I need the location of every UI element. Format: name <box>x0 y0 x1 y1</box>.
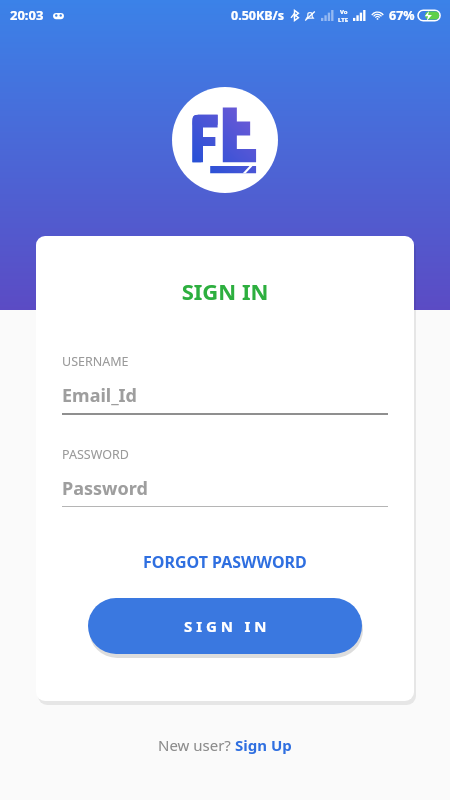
button[interactable]: FORGOT PASWWORD <box>36 551 414 573</box>
staticText: SIGN IN <box>36 276 414 306</box>
staticText: PASSWORD <box>62 446 129 463</box>
staticText: Vo <box>340 8 348 16</box>
staticText: Sign Up <box>235 735 292 755</box>
staticText: 67% <box>389 7 415 24</box>
staticText: Password <box>62 476 148 501</box>
button[interactable]: Email_Id <box>62 383 388 415</box>
staticText: Email_Id <box>62 383 137 408</box>
button[interactable]: S I G N I N <box>88 598 362 654</box>
staticText: FORGOT PASWWORD <box>143 551 307 573</box>
staticText: 20:03 <box>10 6 44 24</box>
button[interactable]: Password <box>62 476 388 507</box>
staticText: New user? <box>158 735 235 755</box>
staticText: USERNAME <box>62 353 129 370</box>
staticText: S I G N I N <box>184 616 267 636</box>
button[interactable]: New user? <box>0 735 450 755</box>
staticText: LTE <box>338 16 349 24</box>
staticText: 0.50KB/s <box>231 7 285 24</box>
